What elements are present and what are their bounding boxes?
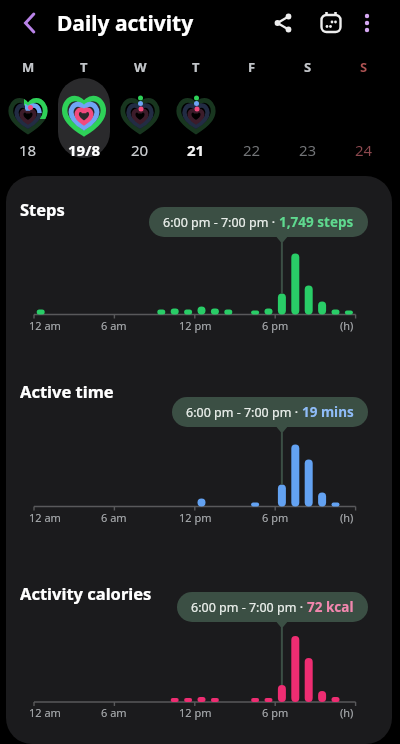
button[interactable]: 6:00 pm - 7:00 pm · — [186, 397, 354, 427]
staticText: (h) — [340, 510, 354, 525]
staticText: Active time — [20, 380, 114, 402]
staticText: S — [304, 58, 312, 74]
staticText: 6 pm — [262, 705, 289, 720]
staticText: 6 am — [101, 705, 127, 720]
staticText: T — [80, 58, 88, 74]
staticText: 20 — [131, 140, 149, 160]
button[interactable]: S — [336, 46, 392, 176]
staticText: 12 pm — [179, 318, 212, 333]
staticText: 19/8 — [68, 140, 100, 160]
button[interactable]: W — [112, 46, 168, 176]
staticText: 22 — [243, 140, 261, 160]
button[interactable] — [267, 7, 299, 39]
button[interactable]: T — [56, 46, 112, 176]
staticText: 18 — [19, 140, 37, 160]
staticText: 21 — [187, 140, 205, 160]
button[interactable]: F — [224, 46, 280, 176]
staticText: (h) — [340, 705, 354, 720]
staticText: 6:00 pm - 7:00 pm · — [163, 214, 279, 231]
staticText: Steps — [20, 198, 65, 220]
staticText: W — [134, 58, 147, 74]
staticText: 12 pm — [179, 705, 212, 720]
staticText: 6 am — [101, 318, 127, 333]
staticText: 6:00 pm - 7:00 pm · — [186, 404, 302, 421]
staticText: 1,749 steps — [279, 213, 354, 231]
staticText: 12 pm — [179, 510, 212, 525]
staticText: 6 am — [101, 510, 127, 525]
staticText: M — [22, 58, 35, 74]
staticText: 12 am — [29, 510, 61, 525]
staticText: Activity calories — [20, 582, 152, 604]
staticText: (h) — [340, 318, 354, 333]
staticText: Daily activity — [57, 9, 194, 38]
staticText: S — [360, 58, 368, 74]
button[interactable] — [315, 7, 347, 39]
staticText: F — [248, 58, 256, 74]
button[interactable]: M — [0, 46, 56, 176]
button[interactable]: 6:00 pm - 7:00 pm · — [163, 207, 354, 237]
staticText: T — [192, 58, 200, 74]
button[interactable] — [14, 7, 46, 39]
button[interactable]: 6:00 pm - 7:00 pm · — [191, 592, 354, 622]
staticText: 24 — [355, 140, 373, 160]
button[interactable]: S — [280, 46, 336, 176]
staticText: 72 kcal — [307, 598, 354, 616]
staticText: 12 am — [29, 705, 61, 720]
staticText: 23 — [299, 140, 317, 160]
staticText: 19 mins — [302, 403, 354, 421]
staticText: 12 am — [29, 318, 61, 333]
staticText: 6 pm — [262, 510, 289, 525]
staticText: 6:00 pm - 7:00 pm · — [191, 599, 307, 616]
staticText: 6 pm — [262, 318, 289, 333]
button[interactable] — [355, 11, 379, 35]
button[interactable]: T — [168, 46, 224, 176]
